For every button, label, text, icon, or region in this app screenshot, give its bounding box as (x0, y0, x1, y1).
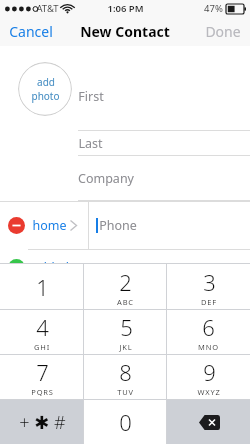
button[interactable]: 0 (84, 400, 167, 444)
staticText: Cancel (9, 22, 53, 41)
staticText: DEF (201, 297, 217, 307)
button[interactable]: 5 (84, 310, 167, 354)
staticText: + ✱ # (19, 410, 66, 435)
staticText: 1 (36, 272, 49, 302)
staticText: JKL (119, 342, 133, 352)
button[interactable]: Cancel (0, 17, 62, 46)
staticText: home (32, 217, 67, 234)
button[interactable]: Company (78, 156, 250, 201)
button[interactable]: First (78, 62, 250, 131)
staticText: 47% (204, 2, 223, 15)
button[interactable]: 6 (167, 310, 250, 354)
button[interactable]: 9 (167, 355, 250, 399)
staticText: 8 (119, 357, 132, 387)
staticText: GHI (34, 342, 50, 352)
button[interactable]: add phone (0, 249, 250, 286)
staticText: add (37, 75, 55, 89)
button[interactable]: Done (196, 17, 250, 46)
staticText: 6 (202, 312, 215, 342)
button[interactable]: add (18, 62, 72, 116)
staticText: Phone (99, 217, 137, 234)
staticText: New Contact (80, 22, 170, 41)
staticText: 5 (120, 312, 133, 342)
staticText: 0 (119, 407, 132, 437)
staticText: TUV (117, 387, 134, 397)
button[interactable]: 7 (0, 355, 84, 399)
staticText: photo (31, 89, 60, 103)
button[interactable]: Last (78, 131, 250, 156)
staticText: ABC (117, 297, 134, 307)
staticText: 9 (203, 357, 216, 387)
staticText: Last (78, 135, 103, 152)
staticText: 4 (36, 312, 49, 342)
staticText: Company (78, 170, 134, 187)
staticText: 2 (119, 267, 132, 297)
button[interactable]: 2 (84, 264, 167, 309)
staticText: 3 (203, 267, 216, 297)
staticText: PQRS (31, 387, 54, 397)
staticText: WXYZ (197, 387, 221, 397)
button[interactable]: Backspace (167, 400, 250, 444)
button[interactable]: + ✱ # (0, 400, 84, 444)
button[interactable]: 1 (0, 264, 84, 309)
staticText: AT&T (36, 2, 59, 15)
staticText: MNO (198, 342, 219, 352)
button[interactable]: 8 (84, 355, 167, 399)
staticText: 7 (36, 357, 49, 387)
button[interactable]: 4 (0, 310, 84, 354)
staticText: Done (205, 22, 241, 41)
staticText: First (78, 88, 104, 105)
button[interactable]: 3 (167, 264, 250, 309)
staticText: add phone (32, 259, 96, 276)
button[interactable]: Remove phone (0, 201, 250, 249)
other: Remove phone (8, 217, 25, 234)
staticText: 1:06 PM (107, 2, 144, 15)
